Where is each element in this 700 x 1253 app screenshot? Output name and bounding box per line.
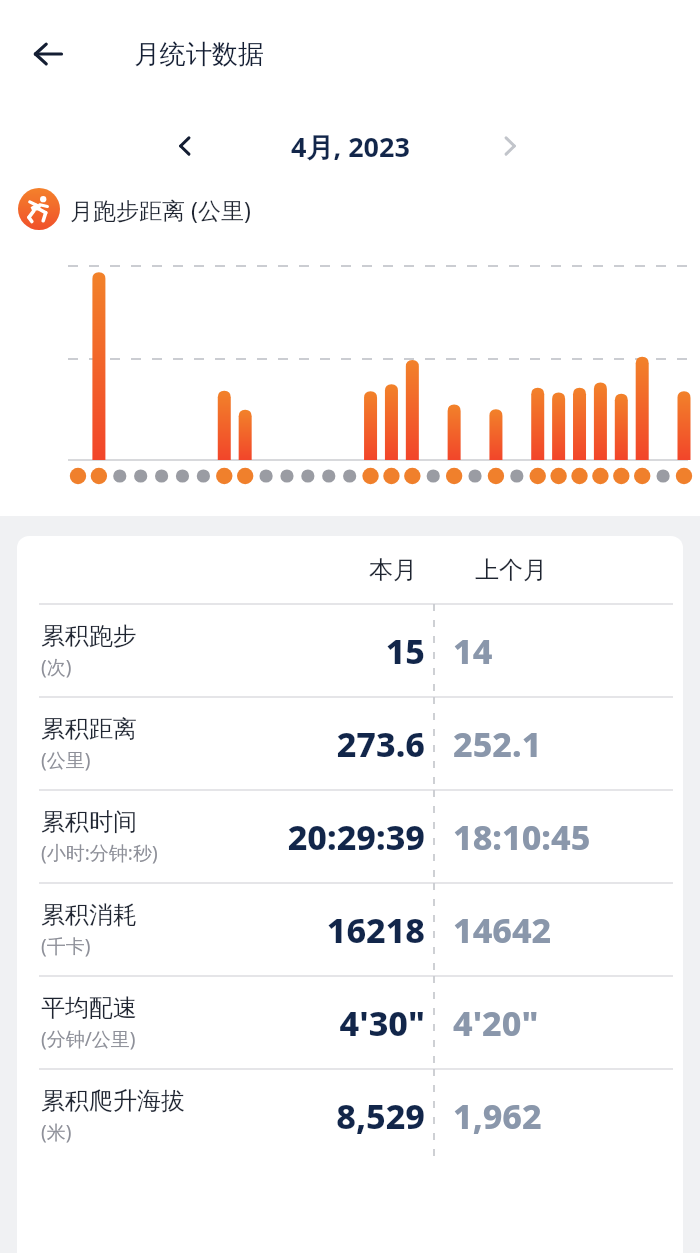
staticText: 4'20" [453, 1000, 539, 1046]
staticText: 月统计数据 [134, 38, 264, 71]
button[interactable]: 累积爬升海拔 [17, 1069, 683, 1162]
staticText: 252.1 [453, 721, 542, 767]
staticText: (分钟/公里) [41, 1026, 136, 1052]
button[interactable]: 4月, 2023 [291, 128, 410, 165]
staticText: 16218 [326, 907, 425, 953]
staticText: 15 [385, 628, 425, 674]
staticText: 本月 [369, 555, 417, 585]
button[interactable]: Previous month [158, 119, 212, 173]
staticText: 4'30" [339, 1000, 425, 1046]
staticText: (次) [41, 654, 72, 680]
staticText: (米) [41, 1119, 72, 1145]
staticText: 18:10:45 [453, 814, 591, 860]
button[interactable]: 累积消耗 [17, 883, 683, 976]
staticText: (千卡) [41, 933, 91, 959]
staticText: 累积跑步 [41, 621, 137, 651]
staticText: 273.6 [336, 721, 425, 767]
staticText: 累积距离 [41, 714, 137, 744]
button[interactable]: 平均配速 [17, 976, 683, 1069]
staticText: (公里) [41, 747, 91, 773]
button[interactable]: 累积距离 [17, 697, 683, 790]
staticText: 月跑步距离 (公里) [70, 194, 251, 225]
button[interactable]: Next month [483, 119, 537, 173]
staticText: 20:29:39 [287, 814, 425, 860]
staticText: 累积消耗 [41, 900, 137, 930]
staticText: 14 [453, 628, 493, 674]
button[interactable]: 月跑步距离 (公里) [18, 188, 251, 230]
staticText: 14642 [453, 907, 552, 953]
staticText: 平均配速 [41, 993, 137, 1023]
staticText: (小时:分钟:秒) [41, 840, 158, 866]
staticText: 累积时间 [41, 807, 137, 837]
staticText: 1,962 [453, 1093, 542, 1139]
staticText: 累积爬升海拔 [41, 1086, 185, 1116]
button[interactable]: 累积跑步 [17, 604, 683, 697]
button[interactable]: Back [20, 26, 76, 82]
staticText: 8,529 [336, 1093, 425, 1139]
button[interactable]: Monthly running distance chart [0, 254, 700, 516]
staticText: 上个月 [475, 555, 547, 585]
button[interactable]: 累积时间 [17, 790, 683, 883]
